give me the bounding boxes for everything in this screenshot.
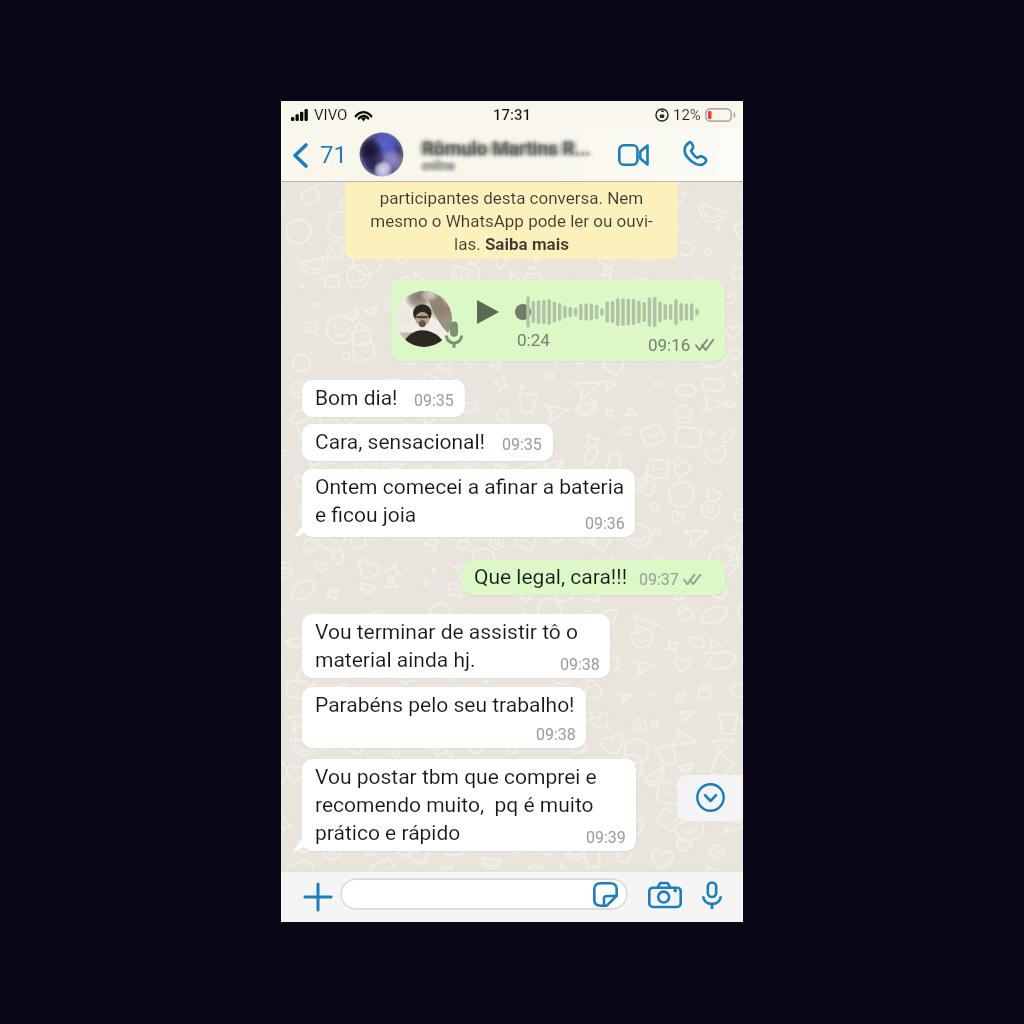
staticText: Rômulo Martins R... <box>422 143 591 165</box>
staticText: online <box>421 159 454 173</box>
staticText: Rômulo Martins R... <box>426 132 595 154</box>
button[interactable]: Attach <box>302 881 334 913</box>
staticText: Rômulo Martins R... <box>422 141 591 163</box>
staticText: Rômulo Martins R... <box>423 136 592 158</box>
staticText: online <box>423 159 456 173</box>
staticText: online <box>419 158 452 172</box>
staticText: online <box>422 160 455 174</box>
staticText: online <box>426 159 459 173</box>
staticText: Rômulo Martins R... <box>418 135 587 157</box>
staticText: Rômulo Martins R... <box>418 132 587 154</box>
staticText: Rômulo Martins R... <box>421 136 590 158</box>
button[interactable]: Vou terminar de assistir tô o material a… <box>302 614 610 678</box>
staticText: online <box>420 161 453 175</box>
staticText: online <box>425 158 458 172</box>
button[interactable]: Que legal, cara!!! <box>462 560 725 595</box>
staticText: Rômulo Martins R... <box>422 133 591 155</box>
staticText: Rômulo Martins R... <box>425 133 594 155</box>
staticText: Rômulo Martins R... <box>424 134 593 156</box>
staticText: online <box>422 162 455 176</box>
staticText: Rômulo Martins R... <box>419 133 588 155</box>
staticText: Rômulo Martins R... <box>422 138 591 160</box>
staticText: online <box>424 156 457 170</box>
staticText: Rômulo Martins R... <box>427 135 596 157</box>
staticText: 09:35 <box>414 391 454 410</box>
staticText: online <box>424 159 457 173</box>
staticText: online <box>422 159 455 173</box>
staticText: 12% <box>673 106 701 124</box>
staticText: online <box>423 159 456 173</box>
staticText: Rômulo Martins R... <box>425 137 594 159</box>
button[interactable]: Video call <box>612 138 655 172</box>
staticText: Rômulo Martins R... <box>427 139 596 161</box>
staticText: online <box>418 157 451 171</box>
button[interactable]: participantes desta conversa. Nem mesmo … <box>345 181 678 259</box>
staticText: Rômulo Martins R... <box>421 137 590 159</box>
staticText: online <box>420 159 453 173</box>
staticText: online <box>419 155 452 169</box>
staticText: Rômulo Martins R... <box>422 139 591 161</box>
staticText: Rômulo Martins R... <box>422 131 591 153</box>
button[interactable]: Ontem comecei a afinar a bateria e ficou… <box>302 469 635 537</box>
staticText: online <box>422 161 455 175</box>
staticText: online <box>417 157 450 171</box>
staticText: online <box>418 159 451 173</box>
staticText: Rômulo Martins R... <box>428 137 597 159</box>
staticText: Rômulo Martins R... <box>424 140 593 162</box>
staticText: online <box>419 159 452 173</box>
staticText: online <box>424 160 457 174</box>
staticText: online <box>417 161 450 175</box>
staticText: online <box>422 157 455 171</box>
staticText: Rômulo Martins R... <box>421 135 590 157</box>
staticText: Rômulo Martins R... <box>425 136 594 158</box>
staticText: online <box>422 155 455 169</box>
button[interactable]: Message <box>340 878 628 910</box>
staticText: online <box>426 157 459 171</box>
staticText: online <box>420 158 453 172</box>
staticText: Rômulo Martins R... <box>416 140 585 162</box>
button[interactable]: Voice call <box>674 134 715 175</box>
staticText: online <box>422 163 455 177</box>
staticText: online <box>421 160 454 174</box>
button[interactable]: Vou postar tbm que comprei e recomendo m… <box>302 759 636 851</box>
staticText: 09:37 <box>639 570 679 589</box>
staticText: 71 <box>320 141 347 169</box>
staticText: online <box>421 161 454 175</box>
staticText: Rômulo Martins R... <box>421 138 590 160</box>
staticText: online <box>423 157 456 171</box>
staticText: online <box>425 160 458 174</box>
staticText: Parabéns pelo seu trabalho! <box>315 693 575 718</box>
staticText: Rômulo Martins R... <box>419 141 588 163</box>
staticText: 09:36 <box>585 514 625 533</box>
staticText: Rômulo Martins R... <box>422 135 591 157</box>
staticText: Rômulo Martins R... <box>428 140 597 162</box>
staticText: Rômulo Martins R... <box>423 138 592 160</box>
staticText: online <box>424 162 457 176</box>
staticText: online <box>419 160 452 174</box>
button[interactable]: Voice message <box>696 879 728 911</box>
button[interactable]: Scroll to bottom <box>677 775 743 821</box>
staticText: Rômulo Martins R... <box>419 137 588 159</box>
staticText: Rômulo Martins R... <box>426 139 595 161</box>
staticText: online <box>426 161 459 175</box>
button[interactable]: Cara, sensacional! <box>302 424 553 461</box>
button[interactable]: Back to chats, 71 unread <box>281 135 353 175</box>
button[interactable]: 0:24 <box>391 280 725 361</box>
staticText: 09:38 <box>560 655 600 674</box>
button[interactable]: Camera <box>647 880 683 910</box>
staticText: online <box>424 157 457 171</box>
staticText: Bom dia! <box>315 386 398 411</box>
staticText: online <box>428 159 461 173</box>
button[interactable]: Bom dia! <box>302 380 465 417</box>
staticText: Rômulo Martins R... <box>422 136 591 158</box>
staticText: online <box>422 155 455 169</box>
staticText: online <box>423 159 456 173</box>
staticText: Rômulo Martins R... <box>416 137 585 159</box>
staticText: online <box>423 158 456 172</box>
staticText: Rômulo Martins R... <box>420 139 589 161</box>
staticText: Que legal, cara!!! <box>474 565 628 590</box>
staticText: Rômulo Martins R... <box>422 137 591 159</box>
staticText: online <box>427 161 460 175</box>
staticText: Rômulo Martins R... <box>417 139 586 161</box>
button[interactable]: Parabéns pelo seu trabalho! <box>302 687 586 748</box>
